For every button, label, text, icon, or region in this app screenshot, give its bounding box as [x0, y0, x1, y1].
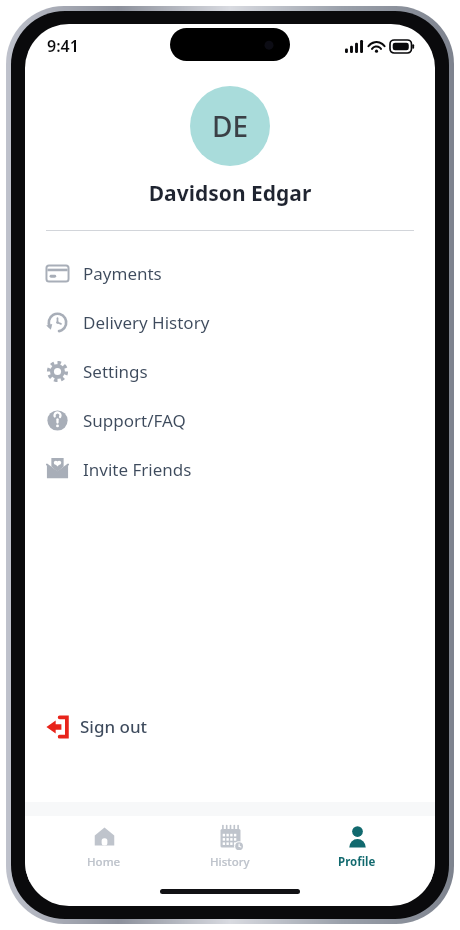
button[interactable]: Invite Friends	[25, 445, 435, 494]
button[interactable]: Profile	[309, 820, 405, 874]
staticText: Invite Friends	[83, 458, 192, 481]
staticText: Settings	[83, 360, 148, 383]
staticText: Davidson Edgar	[25, 179, 435, 208]
staticText: History	[210, 854, 250, 870]
button[interactable]: Delivery History	[25, 298, 435, 347]
staticText: Profile	[338, 854, 376, 870]
button[interactable]: Support/FAQ	[25, 396, 435, 445]
staticText: 9:41	[47, 35, 79, 57]
staticText: Payments	[83, 262, 162, 285]
staticText: Delivery History	[83, 311, 210, 334]
button[interactable]: Payments	[25, 249, 435, 298]
staticText: DE	[212, 107, 249, 145]
staticText: Support/FAQ	[83, 409, 186, 432]
button[interactable]: Home	[56, 820, 152, 874]
staticText: Home	[87, 854, 121, 870]
button[interactable]: Sign out	[25, 707, 435, 746]
button[interactable]: History	[182, 820, 278, 874]
staticText: Sign out	[80, 715, 148, 738]
button[interactable]: Settings	[25, 347, 435, 396]
